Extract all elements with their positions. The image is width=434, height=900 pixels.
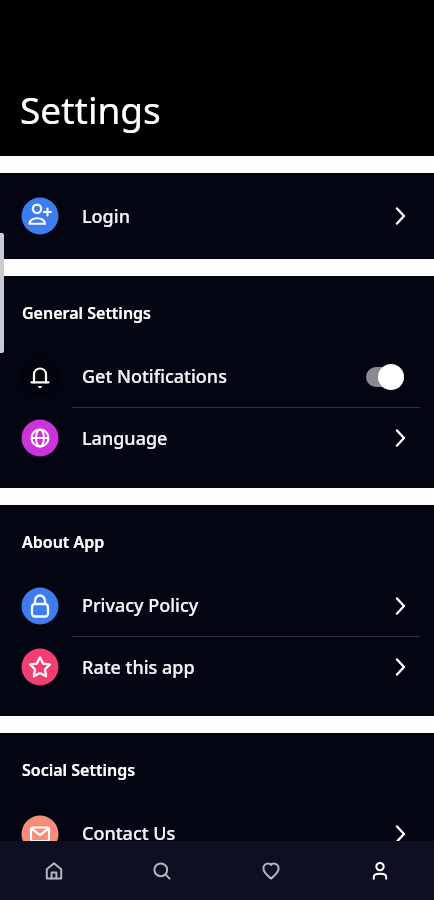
button[interactable]: Get Notifications bbox=[20, 346, 404, 407]
button[interactable]: Contact Us bbox=[20, 803, 410, 864]
staticText: Privacy Policy bbox=[82, 593, 199, 618]
staticText: Get Notifications bbox=[82, 364, 227, 389]
staticText: Rate this app bbox=[82, 655, 195, 680]
staticText: Social Settings bbox=[22, 759, 136, 781]
button[interactable]: Language bbox=[20, 408, 410, 468]
button[interactable] bbox=[0, 841, 108, 900]
button[interactable]: Login bbox=[0, 173, 434, 259]
button[interactable]: Privacy Policy bbox=[20, 575, 410, 636]
staticText: Language bbox=[82, 426, 168, 451]
staticText: Login bbox=[82, 204, 130, 229]
button[interactable] bbox=[216, 841, 325, 900]
staticText: About App bbox=[22, 531, 105, 553]
button[interactable] bbox=[108, 841, 216, 900]
button[interactable] bbox=[325, 841, 434, 900]
button[interactable]: Rate this app bbox=[20, 637, 410, 697]
staticText: Settings bbox=[20, 84, 161, 134]
staticText: General Settings bbox=[22, 302, 152, 324]
staticText: Contact Us bbox=[82, 821, 176, 846]
